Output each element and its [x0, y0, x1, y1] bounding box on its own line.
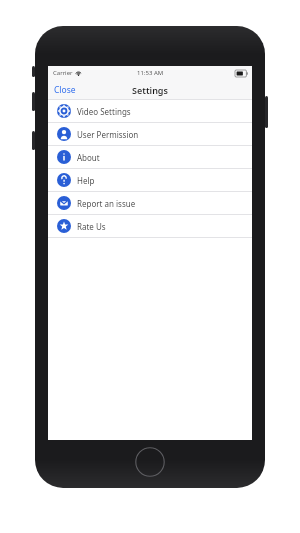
button[interactable]: Rate Us	[48, 215, 252, 238]
staticText: About	[77, 152, 100, 163]
staticText: Settings	[132, 84, 168, 96]
staticText: Carrier	[53, 69, 73, 77]
button[interactable]: Help	[48, 169, 252, 192]
staticText: Video Settings	[77, 106, 131, 117]
button[interactable]: Close	[48, 81, 82, 99]
button[interactable]: About	[48, 146, 252, 169]
button[interactable]: Report an issue	[48, 192, 252, 215]
staticText: Help	[77, 175, 95, 186]
staticText: Close	[54, 84, 76, 96]
button[interactable]: User Permission	[48, 123, 252, 146]
button[interactable]: Video Settings	[48, 100, 252, 123]
button[interactable]: Home	[135, 447, 165, 477]
staticText: Report an issue	[77, 198, 136, 209]
staticText: 11:53 AM	[137, 69, 164, 77]
staticText: Rate Us	[77, 221, 106, 232]
staticText: User Permission	[77, 129, 139, 140]
